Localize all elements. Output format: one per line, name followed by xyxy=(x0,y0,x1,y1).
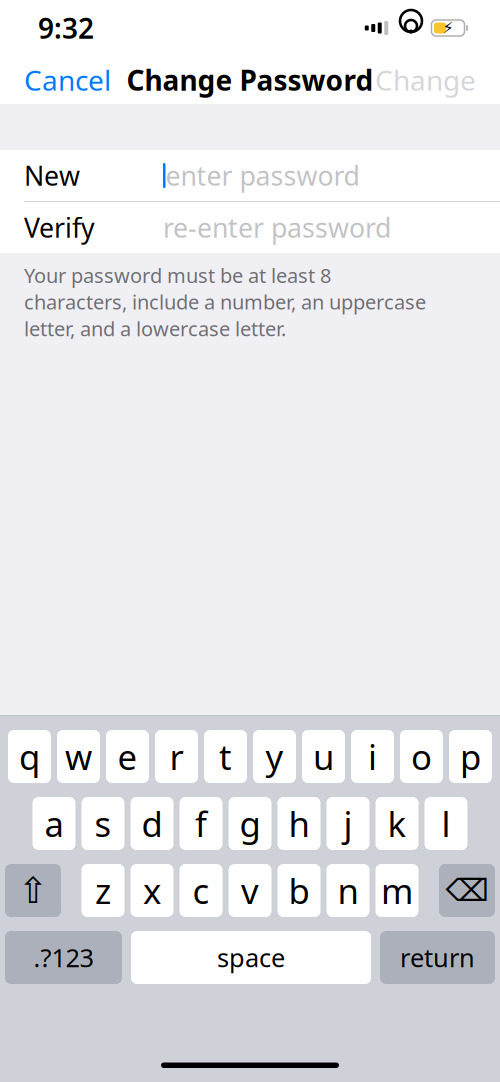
button[interactable]: w xyxy=(57,730,100,783)
staticText: return xyxy=(400,941,475,974)
staticText: z xyxy=(95,867,111,913)
staticText: Change xyxy=(375,61,476,99)
staticText: h xyxy=(288,800,309,846)
staticText: t xyxy=(219,733,232,779)
button[interactable]: r xyxy=(155,730,198,783)
button[interactable]: Shift xyxy=(5,864,61,917)
button[interactable]: Cancel xyxy=(0,56,135,104)
button[interactable]: x xyxy=(130,864,173,917)
button[interactable]: s xyxy=(81,797,124,850)
staticText: Your password must be at least 8 charact… xyxy=(24,262,426,342)
staticText: 9:32 xyxy=(38,9,94,47)
staticText: b xyxy=(288,867,309,913)
button[interactable]: i xyxy=(351,730,394,783)
staticText: Cancel xyxy=(24,61,111,99)
button[interactable]: z xyxy=(81,864,124,917)
staticText: j xyxy=(343,800,352,846)
button[interactable]: l xyxy=(424,797,467,850)
button[interactable]: f xyxy=(179,797,222,850)
button[interactable]: v xyxy=(228,864,271,917)
button[interactable]: h xyxy=(277,797,320,850)
button[interactable]: j xyxy=(326,797,369,850)
staticText: .?123 xyxy=(33,941,93,974)
staticText: p xyxy=(460,733,481,779)
staticText: re-enter password xyxy=(163,210,391,245)
button[interactable]: a xyxy=(32,797,75,850)
staticText: y xyxy=(265,733,283,779)
staticText: s xyxy=(94,800,111,846)
staticText: ⌫ xyxy=(445,873,488,908)
staticText: Verify xyxy=(24,210,95,245)
staticText: o xyxy=(411,733,432,779)
button[interactable]: o xyxy=(400,730,443,783)
button[interactable]: c xyxy=(179,864,222,917)
staticText: g xyxy=(239,800,260,846)
button[interactable]: g xyxy=(228,797,271,850)
button[interactable]: return xyxy=(380,931,495,984)
staticText: w xyxy=(65,733,92,779)
button[interactable]: t xyxy=(204,730,247,783)
staticText: l xyxy=(441,800,450,846)
staticText: k xyxy=(387,800,406,846)
staticText: q xyxy=(19,733,40,779)
staticText: c xyxy=(192,867,209,913)
button[interactable]: u xyxy=(302,730,345,783)
button[interactable]: Verify xyxy=(0,202,500,253)
staticText: space xyxy=(217,941,285,974)
staticText: ⇧ xyxy=(18,870,48,911)
staticText: a xyxy=(44,800,63,846)
staticText: v xyxy=(241,867,259,913)
staticText: u xyxy=(313,733,334,779)
staticText: r xyxy=(169,733,183,779)
button[interactable]: k xyxy=(375,797,418,850)
staticText: Change Password xyxy=(126,61,373,99)
staticText: enter password xyxy=(165,158,359,193)
button[interactable]: p xyxy=(449,730,492,783)
staticText: x xyxy=(143,867,161,913)
staticText: ⚡︎ xyxy=(442,19,453,37)
button[interactable]: m xyxy=(375,864,418,917)
button[interactable]: .?123 xyxy=(5,931,122,984)
staticText: New xyxy=(24,158,80,193)
button[interactable]: q xyxy=(8,730,51,783)
button[interactable]: d xyxy=(130,797,173,850)
button[interactable]: Delete xyxy=(439,864,495,917)
button[interactable]: n xyxy=(326,864,369,917)
staticText: e xyxy=(117,733,137,779)
button[interactable]: New xyxy=(0,150,500,201)
staticText: d xyxy=(141,800,162,846)
button[interactable]: b xyxy=(277,864,320,917)
staticText: m xyxy=(381,867,413,913)
button[interactable]: y xyxy=(253,730,296,783)
staticText: f xyxy=(195,800,207,846)
staticText: n xyxy=(337,867,358,913)
button[interactable]: space xyxy=(131,931,371,984)
button[interactable]: e xyxy=(106,730,149,783)
button[interactable]: Change xyxy=(351,56,500,104)
staticText: i xyxy=(368,733,377,779)
